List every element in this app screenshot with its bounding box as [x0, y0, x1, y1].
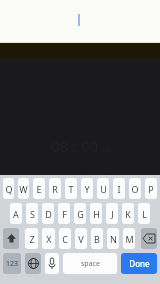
button[interactable]: V [75, 228, 87, 249]
button[interactable]: space [63, 253, 117, 274]
staticText: I [117, 183, 121, 195]
staticText: R [52, 183, 58, 195]
staticText: U [100, 183, 107, 195]
button[interactable]: Q [3, 178, 14, 199]
button[interactable]: C [59, 228, 71, 249]
staticText: 123 [6, 259, 19, 269]
button[interactable] [0, 0, 160, 42]
button[interactable]: D [42, 203, 54, 224]
button[interactable]: G [74, 203, 86, 224]
staticText: W [19, 183, 28, 195]
button[interactable]: L [138, 203, 150, 224]
staticText: X [46, 233, 52, 245]
staticText: L [142, 208, 147, 220]
staticText: H [93, 208, 100, 220]
staticText: J [111, 208, 114, 220]
button[interactable]: T [65, 178, 77, 199]
button[interactable]: Z [25, 228, 38, 249]
button[interactable]: J [106, 203, 118, 224]
button[interactable]: B [91, 228, 103, 249]
button[interactable]: P [145, 178, 157, 199]
button[interactable]: I [113, 178, 125, 199]
staticText: T [68, 183, 74, 195]
staticText: A [13, 208, 19, 220]
staticText: K [125, 208, 131, 220]
button[interactable]: W [18, 178, 29, 199]
staticText: E [36, 183, 42, 195]
staticText: Q [5, 183, 13, 195]
button[interactable]: S [26, 203, 38, 224]
staticText: G [77, 208, 84, 220]
button[interactable]: A [10, 203, 22, 224]
staticText: N [110, 233, 117, 245]
button[interactable]: N [107, 228, 119, 249]
staticText: Done [129, 258, 150, 269]
button[interactable]: H [90, 203, 102, 224]
staticText: Y [84, 183, 90, 195]
staticText: F [62, 208, 67, 220]
button[interactable]: Voice input [45, 253, 59, 274]
button[interactable]: 123 [3, 253, 21, 274]
staticText: M [125, 233, 134, 245]
button[interactable]: X [42, 228, 55, 249]
button[interactable]: Backspace [141, 228, 157, 249]
button[interactable]: Change keyboard language [25, 253, 41, 274]
staticText: V [78, 233, 84, 245]
staticText: B [94, 233, 100, 245]
staticText: O [131, 183, 139, 195]
staticText: S [30, 208, 35, 220]
staticText: C [62, 233, 68, 245]
button[interactable]: Shift [3, 228, 19, 249]
button[interactable]: E [33, 178, 45, 199]
button[interactable]: Done [121, 253, 157, 274]
button[interactable]: U [97, 178, 109, 199]
staticText: Z [29, 233, 35, 245]
staticText: space [81, 259, 100, 269]
staticText: D [45, 208, 52, 220]
button[interactable]: F [58, 203, 70, 224]
button[interactable]: M [123, 228, 135, 249]
button[interactable]: R [49, 178, 61, 199]
staticText: P [148, 183, 154, 195]
button[interactable]: O [129, 178, 141, 199]
button[interactable]: Y [81, 178, 93, 199]
button[interactable]: K [122, 203, 134, 224]
